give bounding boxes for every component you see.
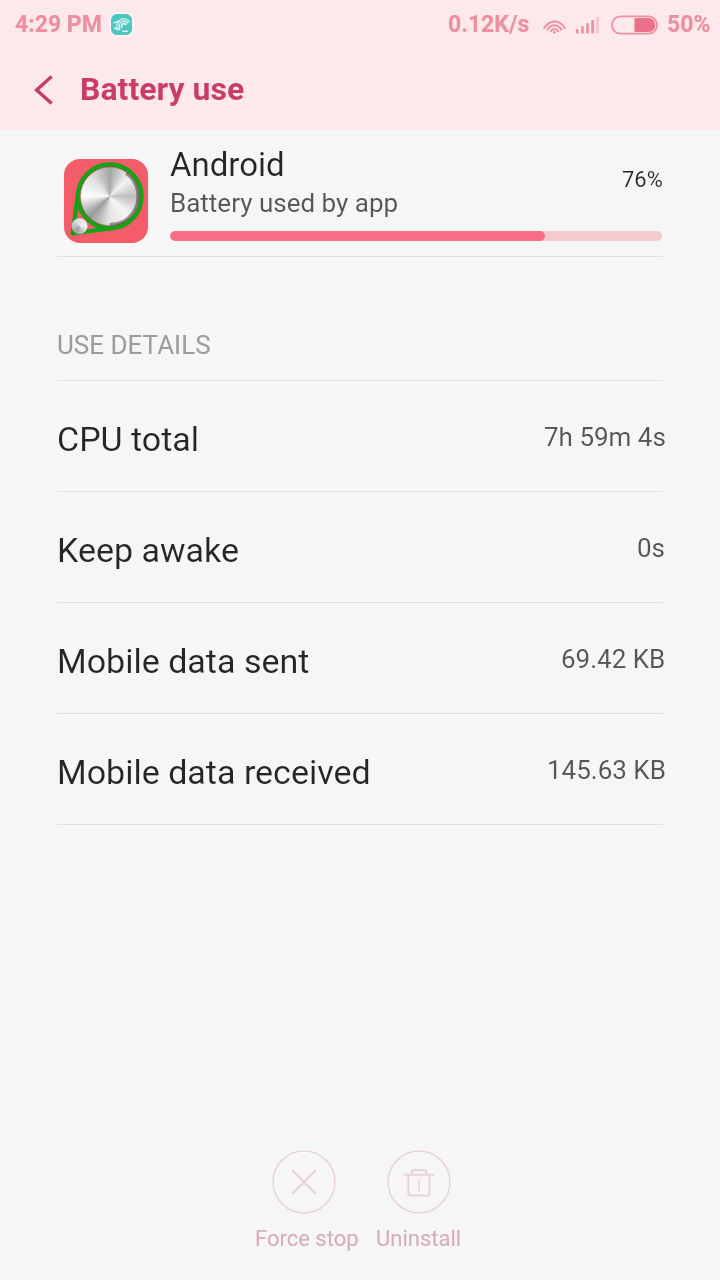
- staticText: Mobile data sent: [57, 641, 558, 681]
- staticText: Force stop: [255, 1226, 359, 1252]
- staticText: 69.42 KB: [561, 644, 666, 674]
- button[interactable]: Uninstall: [371, 1150, 467, 1252]
- button[interactable]: CPU total: [0, 381, 720, 491]
- staticText: 7h 59m 4s: [544, 422, 666, 452]
- staticText: Android: [170, 145, 285, 184]
- staticText: 4:29 PM: [15, 11, 102, 38]
- staticText: USE DETAILS: [57, 330, 211, 360]
- staticText: 50%: [667, 11, 711, 38]
- staticText: Uninstall: [376, 1226, 462, 1252]
- button[interactable]: Mobile data received: [0, 714, 720, 824]
- staticText: Mobile data received: [57, 752, 544, 792]
- staticText: Battery use: [80, 70, 245, 108]
- staticText: Battery used by app: [170, 188, 399, 218]
- staticText: CPU total: [57, 419, 541, 459]
- staticText: 0s: [637, 533, 666, 563]
- button[interactable]: Force stop: [246, 1150, 368, 1252]
- staticText: Keep awake: [57, 530, 634, 570]
- staticText: 76%: [622, 167, 663, 193]
- staticText: 145.63 KB: [547, 755, 666, 785]
- button[interactable]: Back: [0, 49, 84, 130]
- staticText: 0.12K/s: [448, 11, 530, 38]
- button[interactable]: Mobile data sent: [0, 603, 720, 713]
- button[interactable]: Keep awake: [0, 492, 720, 602]
